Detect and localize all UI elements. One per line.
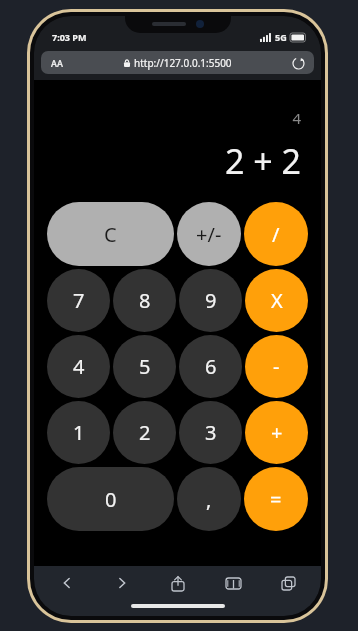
staticText: 4 [73,353,85,380]
button[interactable]: 9 [179,269,242,332]
button[interactable]: - [245,335,308,398]
staticText: - [273,353,280,380]
button[interactable]: 3 [179,401,242,464]
staticText: 7 [73,287,85,314]
staticText: + [271,419,283,446]
staticText: , [206,486,212,513]
staticText: 6 [205,353,217,380]
button[interactable]: C [47,202,174,266]
staticText: 7:03 PM [52,31,87,43]
staticText: / [272,221,280,248]
staticText: = [270,486,282,513]
button[interactable]: X [245,269,308,332]
staticText: 4 [34,108,301,128]
button[interactable]: Reload [291,56,305,70]
button[interactable]: 8 [113,269,176,332]
staticText: http://127.0.0.1:5500 [134,56,232,70]
staticText: AA [51,57,63,69]
staticText: +/- [196,221,222,248]
button[interactable]: Share [157,568,199,598]
staticText: 5G [275,31,287,43]
staticText: 0 [105,486,117,513]
button[interactable]: 6 [179,335,242,398]
staticText: 5 [139,353,151,380]
button[interactable]: +/- [177,202,241,266]
button[interactable]: , [177,467,241,531]
staticText: 8 [139,287,151,314]
button[interactable]: Bookmarks [212,568,254,598]
staticText: C [104,221,117,248]
button[interactable]: = [244,467,308,531]
button[interactable]: 4 [47,335,110,398]
button[interactable]: + [245,401,308,464]
button[interactable]: 5 [113,335,176,398]
button[interactable]: AA [41,51,314,74]
button[interactable]: 7 [47,269,110,332]
button[interactable]: 0 [47,467,174,531]
staticText: 1 [73,419,85,446]
button[interactable]: Back [46,568,88,598]
button[interactable]: 2 [113,401,176,464]
staticText: 2 + 2 [34,138,301,184]
button[interactable]: 1 [47,401,110,464]
staticText: 2 [139,419,151,446]
button[interactable]: / [244,202,308,266]
button[interactable]: Forward [101,568,143,598]
button[interactable]: Tabs [267,568,309,598]
staticText: 9 [205,287,217,314]
staticText: X [271,287,283,314]
staticText: 3 [205,419,217,446]
